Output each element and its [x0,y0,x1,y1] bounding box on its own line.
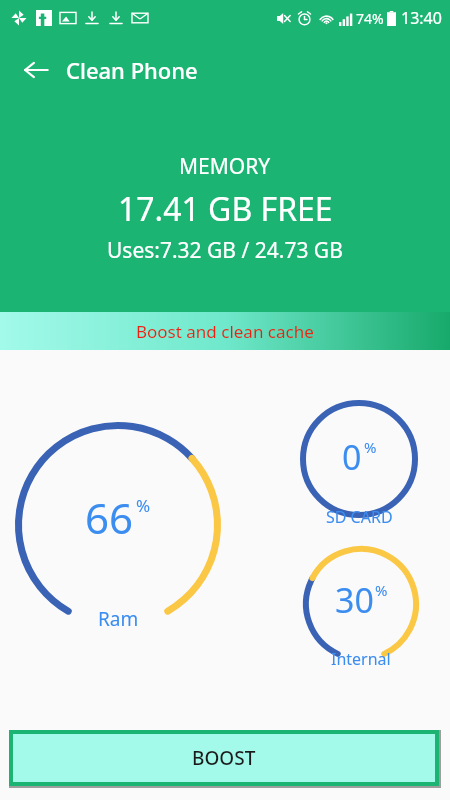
staticText: % [136,494,151,517]
button[interactable]: Boost and clean cache [0,312,450,350]
staticText: 74% [356,9,384,28]
staticText: 30 [335,577,374,623]
staticText: 0 [342,434,362,480]
staticText: % [375,580,388,600]
staticText: 66 [85,489,134,546]
staticText: 13:40 [401,7,442,29]
button[interactable]: 66 [15,422,221,628]
staticText: Clean Phone [66,55,198,85]
staticText: MEMORY [179,152,271,181]
staticText: SD CARD [326,506,393,528]
button[interactable]: Back [14,48,58,92]
button[interactable]: 30 [303,546,419,662]
staticText: % [364,437,377,457]
staticText: Uses:7.32 GB / 24.73 GB [107,236,343,265]
staticText: Internal [331,648,391,670]
button[interactable]: BOOST [13,734,435,782]
button[interactable]: 0 [300,400,418,518]
staticText: BOOST [192,745,256,771]
staticText: 17.41 GB FREE [118,187,333,231]
staticText: Boost and clean cache [136,320,314,343]
staticText: Ram [98,606,139,632]
